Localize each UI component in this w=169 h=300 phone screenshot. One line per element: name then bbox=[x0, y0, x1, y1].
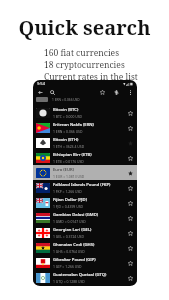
staticText: Bitcoin (BTC) bbox=[53, 107, 79, 113]
staticText: 1 EUR = 1.0813 USD bbox=[53, 174, 85, 179]
staticText: 1 GEL = 0.3724 USD bbox=[53, 234, 84, 239]
button[interactable]: Gibraltar Pound (GIP) bbox=[33, 255, 137, 270]
button[interactable]: Georgian Lari (GEL) bbox=[33, 225, 137, 240]
button[interactable]: Add favorite bbox=[126, 259, 134, 267]
button[interactable]: Fijian Dollar (FJD) bbox=[33, 195, 137, 210]
staticText: 1 ETH = 3623.4 USD bbox=[53, 144, 85, 149]
button[interactable]: Back bbox=[36, 88, 44, 96]
staticText: Gibraltar Pound (GIP) bbox=[53, 257, 96, 263]
staticText: Euro (EUR) bbox=[53, 167, 74, 173]
staticText: 1 FKP = 1.266 USD bbox=[53, 189, 82, 194]
button[interactable]: Euro (EUR) bbox=[33, 165, 137, 180]
staticText: Ethiopian Birr (ETB) bbox=[53, 152, 92, 158]
staticText: 1 GTQ = 0.1288 USD bbox=[53, 279, 85, 284]
button[interactable]: Add favorite bbox=[126, 199, 134, 207]
button[interactable]: Remove favorite bbox=[126, 139, 134, 147]
staticText: Fijian Dollar (FJD) bbox=[53, 197, 87, 203]
button[interactable]: Ghanaian Cedi (GHS) bbox=[33, 240, 137, 255]
staticText: Quick search bbox=[0, 14, 169, 41]
staticText: 1 GHS = 0.0764 USD bbox=[53, 249, 85, 254]
button[interactable]: Add favorite bbox=[126, 214, 134, 222]
button[interactable]: Guatemalan Quetzal (GTQ) bbox=[33, 270, 137, 285]
button[interactable]: Favorites bbox=[98, 88, 106, 96]
staticText: 9:54 bbox=[37, 81, 45, 86]
button[interactable]: Search bbox=[48, 88, 56, 96]
staticText: 1 FJD = 0.4399 USD bbox=[53, 204, 83, 209]
button[interactable]: Gambian Dalasi (GMD) bbox=[33, 210, 137, 225]
staticText: 160 fiat currencies bbox=[44, 47, 119, 59]
button[interactable]: Add favorite bbox=[126, 109, 134, 117]
staticText: 1 ETB = 0.0176 USD bbox=[53, 159, 84, 164]
staticText: 1 GMD = 0.0147 USD bbox=[53, 219, 86, 224]
button[interactable]: More options bbox=[126, 88, 134, 96]
button[interactable]: Bitcoin (ETH) bbox=[33, 135, 137, 150]
staticText: Guatemalan Quetzal (GTQ) bbox=[53, 272, 107, 278]
button[interactable]: Remove favorite bbox=[126, 169, 134, 177]
button[interactable]: Add favorite bbox=[126, 274, 134, 282]
staticText: 1 ERN = 0.066 USD bbox=[53, 129, 83, 134]
staticText: Current rates in the list bbox=[44, 71, 138, 83]
staticText: Ghanaian Cedi (GHS) bbox=[53, 242, 95, 248]
button[interactable]: Add favorite bbox=[126, 124, 134, 132]
staticText: Falkland Islands Pound (FKP) bbox=[53, 182, 111, 188]
staticText: Georgian Lari (GEL) bbox=[53, 227, 92, 233]
button[interactable]: Eritrean Nakfa (ERN) bbox=[33, 120, 137, 135]
button[interactable]: Add favorite bbox=[126, 229, 134, 237]
button[interactable]: Add favorite bbox=[126, 154, 134, 162]
button[interactable]: Falkland Islands Pound (FKP) bbox=[33, 180, 137, 195]
staticText: Bitcoin (ETH) bbox=[53, 137, 79, 143]
staticText: 1 BTC = 0.000 USD bbox=[53, 114, 83, 119]
staticText: Gambian Dalasi (GMD) bbox=[53, 212, 99, 218]
staticText: Eritrean Nakfa (ERN) bbox=[53, 122, 94, 128]
button[interactable]: Add favorite bbox=[126, 244, 134, 252]
staticText: 18 cryptocurrencies bbox=[44, 59, 125, 71]
button[interactable]: Add favorite bbox=[126, 184, 134, 192]
button[interactable]: Ethiopian Birr (ETB) bbox=[33, 150, 137, 165]
staticText: 1 ERN = 0.066 USD bbox=[52, 98, 80, 102]
button[interactable]: Currency bbox=[112, 88, 120, 96]
button[interactable]: Bitcoin (BTC) bbox=[33, 105, 137, 120]
staticText: 1 GIP = 1.266 USD bbox=[53, 264, 82, 269]
